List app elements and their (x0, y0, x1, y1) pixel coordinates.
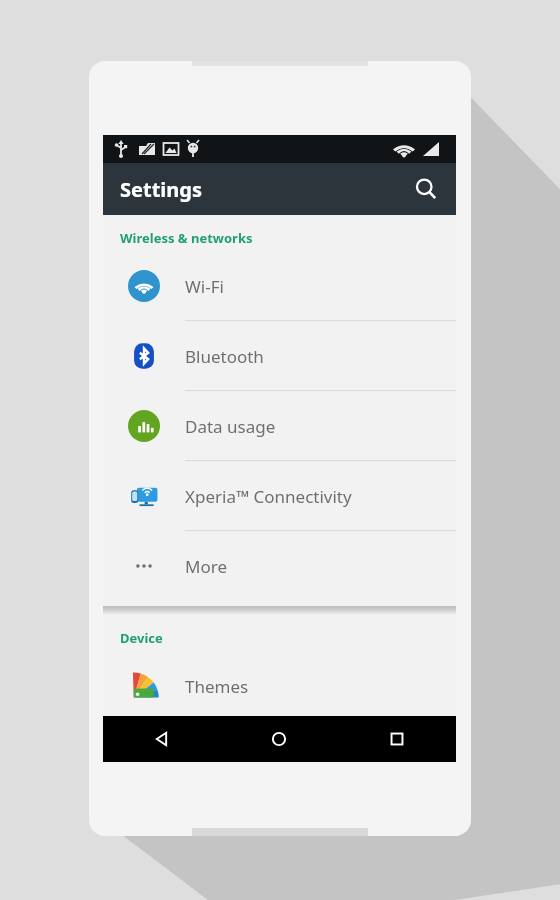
staticText: Data usage (185, 415, 276, 438)
staticText: Device (120, 629, 163, 647)
button[interactable]: Themes (103, 651, 456, 721)
staticText: Wi-Fi (185, 275, 224, 298)
staticText: Bluetooth (185, 345, 264, 368)
button[interactable]: Data usage (103, 391, 456, 461)
staticText: Settings (120, 176, 202, 203)
button[interactable]: Recents (338, 716, 456, 762)
staticText: Themes (185, 675, 249, 698)
staticText: More (185, 555, 227, 578)
button[interactable]: Bluetooth (103, 321, 456, 391)
button[interactable]: Back (103, 716, 220, 762)
staticText: Wireless & networks (120, 229, 253, 247)
button[interactable]: Search (406, 169, 446, 209)
button[interactable]: More (103, 531, 456, 601)
button[interactable]: Home (220, 716, 338, 762)
button[interactable]: Wi-Fi (103, 251, 456, 321)
staticText: Xperia™ Connectivity (185, 485, 352, 508)
button[interactable]: Xperia™ Connectivity (103, 461, 456, 531)
